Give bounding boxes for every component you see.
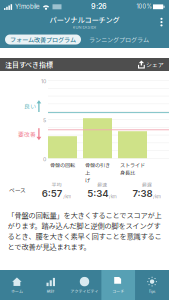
button[interactable]: ストライド身長比 <box>118 131 147 158</box>
staticText: アクティビティ <box>70 288 98 294</box>
staticText: 5:34 <box>87 188 108 199</box>
button[interactable]: 骨盤の回転 <box>48 136 77 158</box>
staticText: 注目すべき指標 <box>5 59 53 69</box>
staticText: 骨盤の回転 <box>50 161 75 169</box>
staticText: 統計 <box>47 288 55 294</box>
staticText: 10 <box>41 78 46 84</box>
staticText: ランニングプログラム <box>89 35 149 44</box>
staticText: ペース <box>9 186 26 194</box>
button[interactable]: ランニングプログラム <box>84 34 154 44</box>
staticText: 骨盤の引き上 げ <box>85 161 110 184</box>
staticText: パーソナルコーチング <box>49 14 119 25</box>
staticText: Y!mobile <box>15 3 40 10</box>
button[interactable]: 統計 <box>34 270 68 300</box>
staticText: 良い <box>24 102 36 110</box>
staticText: RUN EASIER <box>72 25 96 30</box>
button[interactable]: Tips <box>135 270 169 300</box>
staticText: ホーム <box>11 288 23 294</box>
staticText: 5 <box>43 117 46 123</box>
button[interactable]: ホーム <box>0 270 34 300</box>
staticText: 6:57 <box>42 188 63 199</box>
staticText: 7:38 <box>132 188 152 199</box>
staticText: フォーム改善プログラム <box>10 35 76 44</box>
button[interactable]: フォーム改善プログラム <box>5 34 81 44</box>
staticText: 「骨盤の回転量」を大きくすることでスコアが上がります。踏み込んだ脚と逆側の脚をス… <box>7 210 161 252</box>
staticText: 最速 <box>97 181 107 188</box>
staticText: 9:26 <box>91 2 107 11</box>
staticText: コーチ <box>112 288 124 294</box>
button[interactable]: シェア <box>138 58 164 70</box>
staticText: 0 <box>43 156 46 162</box>
staticText: ストライド 身長比 <box>120 161 145 176</box>
staticText: 要改善 <box>18 130 36 138</box>
staticText: 最遅 <box>142 181 152 188</box>
staticText: /km <box>109 194 117 199</box>
staticText: Tips <box>149 288 156 294</box>
button[interactable]: アクティビティ <box>68 270 101 300</box>
staticText: 100% <box>136 3 151 10</box>
staticText: シェア <box>146 60 164 69</box>
staticText: /km <box>153 194 161 199</box>
button[interactable]: More options <box>154 13 169 31</box>
button[interactable]: コーチ <box>101 270 135 300</box>
staticText: 平均 <box>52 181 62 188</box>
button[interactable]: 骨盤の引き上げ <box>83 118 112 158</box>
staticText: /km <box>63 194 71 199</box>
